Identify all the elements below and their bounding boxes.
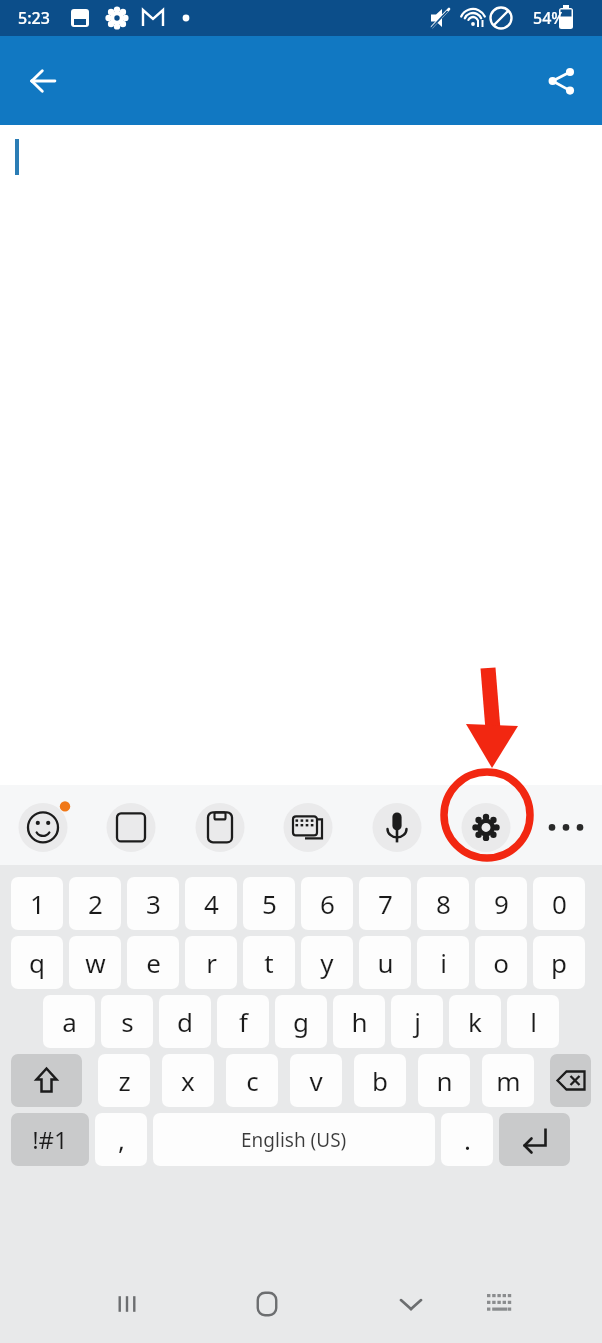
staticText: b — [372, 1063, 388, 1098]
button[interactable]: r — [185, 936, 237, 989]
button[interactable]: z — [98, 1054, 150, 1107]
button[interactable]: s — [101, 995, 153, 1048]
button[interactable]: 4 — [185, 877, 237, 930]
button[interactable]: Hide keyboard — [380, 1273, 442, 1335]
button[interactable]: 2 — [69, 877, 121, 930]
staticText: r — [206, 945, 217, 980]
button[interactable]: Voice input — [371, 801, 420, 850]
staticText: c — [246, 1063, 259, 1098]
button[interactable]: 9 — [475, 877, 527, 930]
button[interactable]: v — [290, 1054, 342, 1107]
staticText: English (US) — [241, 1127, 347, 1153]
button[interactable]: y — [301, 936, 353, 989]
button[interactable]: Back — [14, 51, 74, 111]
button[interactable]: b — [354, 1054, 406, 1107]
button[interactable]: Home — [236, 1273, 298, 1335]
button[interactable]: f — [217, 995, 269, 1048]
button[interactable]: Recents — [96, 1273, 158, 1335]
staticText: !#1 — [32, 1123, 68, 1156]
button[interactable]: o — [475, 936, 527, 989]
staticText: l — [530, 1004, 537, 1039]
button[interactable]: Clipboard — [195, 801, 244, 850]
staticText: f — [239, 1004, 248, 1039]
staticText: 9 — [494, 886, 509, 921]
button[interactable]: i — [417, 936, 469, 989]
staticText: d — [177, 1004, 193, 1039]
button[interactable]: 3 — [127, 877, 179, 930]
staticText: 1 — [30, 886, 45, 921]
button[interactable]: j — [391, 995, 443, 1048]
button[interactable]: Share — [532, 52, 590, 110]
button[interactable]: Keyboard layout — [472, 1277, 526, 1331]
button[interactable]: 1 — [11, 877, 63, 930]
button[interactable]: English (US) — [153, 1113, 435, 1166]
button[interactable]: . — [441, 1113, 493, 1166]
staticText: j — [414, 1004, 421, 1039]
button[interactable]: 5 — [243, 877, 295, 930]
staticText: 5 — [262, 886, 277, 921]
staticText: 2 — [88, 886, 103, 921]
staticText: v — [309, 1063, 323, 1098]
staticText: z — [118, 1063, 131, 1098]
button[interactable]: Enter — [499, 1113, 570, 1166]
staticText: 0 — [552, 886, 567, 921]
button[interactable]: Switch keyboard — [283, 801, 332, 850]
button[interactable]: c — [226, 1054, 278, 1107]
button[interactable]: t — [243, 936, 295, 989]
button[interactable]: u — [359, 936, 411, 989]
staticText: 4 — [204, 886, 219, 921]
staticText: n — [436, 1063, 453, 1098]
staticText: i — [440, 945, 447, 980]
staticText: p — [551, 945, 567, 980]
button[interactable]: m — [482, 1054, 534, 1107]
staticText: 5:23 — [18, 7, 50, 29]
button[interactable]: 8 — [417, 877, 469, 930]
button[interactable]: Backspace — [550, 1054, 591, 1107]
staticText: 6 — [320, 886, 335, 921]
staticText: , — [118, 1122, 125, 1157]
button[interactable]: p — [533, 936, 585, 989]
staticText: h — [351, 1004, 368, 1039]
button[interactable]: h — [333, 995, 385, 1048]
staticText: e — [146, 945, 161, 980]
button[interactable]: x — [162, 1054, 214, 1107]
button[interactable]: Symbols — [107, 801, 156, 850]
button[interactable]: n — [418, 1054, 470, 1107]
button[interactable]: e — [127, 936, 179, 989]
button[interactable]: g — [275, 995, 327, 1048]
staticText: k — [468, 1004, 482, 1039]
button[interactable]: 0 — [533, 877, 585, 930]
button[interactable]: l — [507, 995, 559, 1048]
button[interactable]: More options — [540, 803, 584, 847]
button[interactable]: !#1 — [11, 1113, 89, 1166]
button[interactable]: Shift — [11, 1054, 82, 1107]
button[interactable]: a — [43, 995, 95, 1048]
staticText: 3 — [146, 886, 161, 921]
button[interactable]: Emoji — [19, 801, 68, 850]
button[interactable]: Keyboard settings — [459, 801, 508, 850]
staticText: s — [121, 1004, 134, 1039]
button[interactable]: q — [11, 936, 63, 989]
staticText: g — [293, 1004, 309, 1039]
staticText: 54% — [533, 7, 565, 29]
staticText: t — [264, 945, 274, 980]
staticText: 8 — [436, 886, 451, 921]
button[interactable]: k — [449, 995, 501, 1048]
staticText: x — [181, 1063, 195, 1098]
staticText: w — [85, 945, 106, 980]
staticText: q — [29, 945, 45, 980]
button[interactable]: 6 — [301, 877, 353, 930]
staticText: y — [320, 945, 334, 980]
staticText: u — [377, 945, 394, 980]
staticText: 7 — [378, 886, 393, 921]
staticText: a — [62, 1004, 77, 1039]
button[interactable]: 7 — [359, 877, 411, 930]
button[interactable]: d — [159, 995, 211, 1048]
button[interactable]: , — [95, 1113, 147, 1166]
staticText: o — [493, 945, 509, 980]
staticText: . — [464, 1122, 471, 1157]
button[interactable]: w — [69, 936, 121, 989]
staticText: m — [496, 1063, 521, 1098]
